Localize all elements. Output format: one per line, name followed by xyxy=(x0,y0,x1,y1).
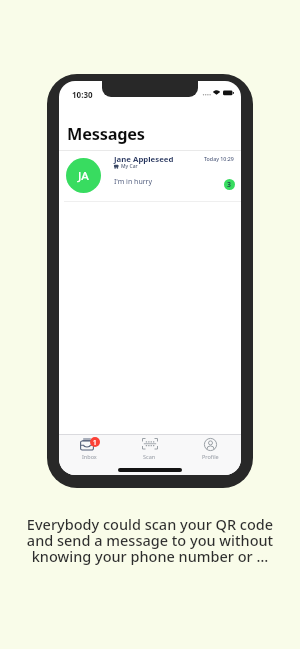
staticText: I'm in hurry xyxy=(114,177,153,187)
staticText: 1 xyxy=(93,438,97,447)
staticText: JA xyxy=(78,168,89,184)
staticText: 3 xyxy=(227,180,232,190)
button[interactable]: JA xyxy=(59,151,241,201)
button[interactable]: 1 xyxy=(59,437,119,460)
staticText: Inbox xyxy=(82,453,97,460)
staticText: Everybody could scan your QR code and se… xyxy=(0,514,300,566)
staticText: Today 10:29 xyxy=(204,155,234,162)
button[interactable]: Profile xyxy=(180,437,241,460)
button[interactable]: Scan xyxy=(119,437,180,460)
staticText: Scan xyxy=(143,453,156,460)
staticText: Profile xyxy=(202,453,219,460)
staticText: Messages xyxy=(67,123,145,145)
staticText: My Car xyxy=(121,163,138,170)
staticText: 10:30 xyxy=(72,89,93,100)
staticText: Jane Appleseed xyxy=(114,154,174,165)
